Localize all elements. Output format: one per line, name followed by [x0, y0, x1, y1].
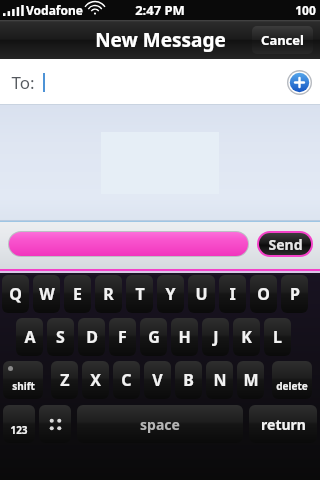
button[interactable]: F: [109, 318, 136, 356]
staticText: I: [229, 283, 236, 305]
button[interactable]: D: [78, 318, 105, 356]
staticText: A: [24, 326, 36, 348]
button[interactable]: W: [33, 275, 60, 313]
staticText: To:: [11, 71, 35, 94]
button[interactable]: I: [219, 275, 246, 313]
staticText: J: [213, 326, 219, 348]
staticText: 2:47 PM: [135, 1, 185, 19]
button[interactable]: X: [82, 361, 109, 399]
staticText: U: [195, 283, 208, 305]
staticText: S: [56, 326, 65, 348]
staticText: W: [39, 283, 55, 305]
staticText: L: [273, 326, 282, 348]
staticText: C: [121, 369, 132, 391]
button[interactable]: R: [95, 275, 122, 313]
staticText: V: [152, 369, 163, 391]
button[interactable]: V: [144, 361, 171, 399]
button[interactable]: Cancel: [252, 26, 313, 54]
staticText: K: [241, 326, 252, 348]
button[interactable]: shift: [3, 361, 43, 399]
button[interactable]: Add contact: [287, 70, 312, 95]
button[interactable]: return: [249, 405, 317, 443]
button[interactable]: K: [233, 318, 260, 356]
button[interactable]: E: [64, 275, 91, 313]
staticText: P: [290, 283, 300, 305]
staticText: Q: [9, 283, 22, 305]
staticText: N: [213, 369, 227, 391]
staticText: R: [103, 283, 114, 305]
button[interactable]: 123: [3, 405, 35, 443]
staticText: delete: [276, 379, 308, 393]
button[interactable]: G: [140, 318, 167, 356]
staticText: D: [86, 326, 98, 348]
button[interactable]: Y: [157, 275, 184, 313]
button[interactable]: P: [281, 275, 308, 313]
button[interactable]: A: [16, 318, 43, 356]
button[interactable]: [9, 232, 248, 256]
button[interactable]: U: [188, 275, 215, 313]
button[interactable]: Z: [51, 361, 78, 399]
staticText: return: [261, 415, 306, 434]
staticText: 100: [295, 2, 316, 18]
button[interactable]: S: [47, 318, 74, 356]
button[interactable]: Emoji keyboard: [39, 405, 71, 443]
button[interactable]: B: [175, 361, 202, 399]
staticText: shift: [12, 379, 35, 393]
staticText: New Message: [95, 27, 226, 53]
button[interactable]: H: [171, 318, 198, 356]
staticText: Send: [268, 235, 303, 254]
staticText: 123: [10, 423, 28, 437]
staticText: X: [90, 369, 101, 391]
staticText: Z: [60, 369, 70, 391]
staticText: F: [118, 326, 127, 348]
button[interactable]: C: [113, 361, 140, 399]
button[interactable]: Q: [2, 275, 29, 313]
staticText: T: [135, 283, 145, 305]
button[interactable]: N: [206, 361, 233, 399]
button[interactable]: delete: [272, 361, 312, 399]
staticText: Vodafone: [26, 2, 83, 18]
button[interactable]: L: [264, 318, 291, 356]
staticText: Cancel: [261, 31, 304, 49]
staticText: G: [148, 326, 160, 348]
staticText: space: [140, 415, 180, 434]
button[interactable]: O: [250, 275, 277, 313]
button[interactable]: space: [77, 405, 243, 443]
staticText: E: [73, 283, 82, 305]
button[interactable]: M: [237, 361, 264, 399]
staticText: H: [178, 326, 191, 348]
staticText: M: [243, 369, 259, 391]
button[interactable]: Send: [259, 233, 311, 255]
staticText: Y: [165, 283, 176, 305]
staticText: O: [257, 283, 270, 305]
button[interactable]: J: [202, 318, 229, 356]
button[interactable]: T: [126, 275, 153, 313]
staticText: B: [183, 369, 194, 391]
